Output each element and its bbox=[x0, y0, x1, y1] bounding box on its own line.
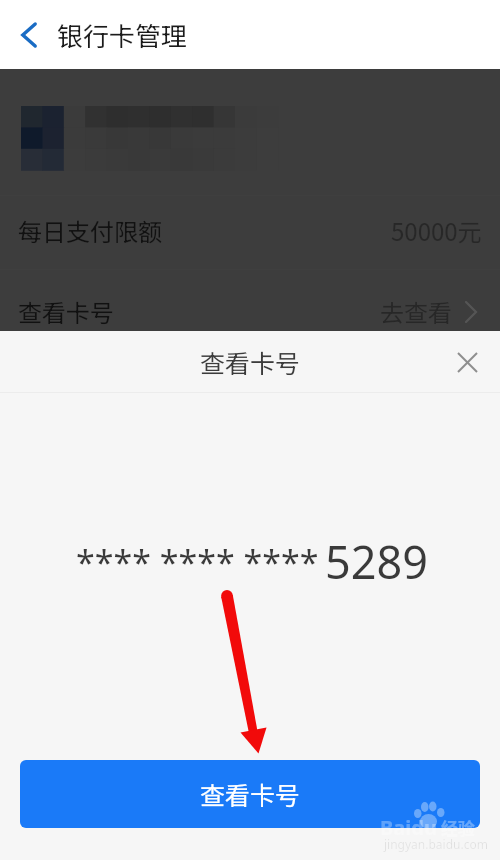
button[interactable]: 每日支付限额 bbox=[0, 194, 500, 267]
staticText: Baidu bbox=[380, 814, 437, 841]
staticText: 50000元 bbox=[391, 213, 482, 248]
button[interactable]: 查看卡号 bbox=[20, 760, 480, 828]
staticText: 银行卡管理 bbox=[57, 16, 188, 54]
staticText: **** **** **** bbox=[76, 539, 319, 585]
button[interactable]: Back bbox=[0, 0, 46, 69]
staticText: jingyan.baidu.com bbox=[384, 836, 488, 852]
staticText: 查看卡号 bbox=[200, 344, 301, 380]
staticText: 查看卡号 bbox=[18, 294, 114, 329]
button[interactable]: Close bbox=[445, 340, 489, 384]
staticText: 查看卡号 bbox=[200, 776, 301, 812]
button[interactable]: 查看卡号 bbox=[0, 281, 500, 342]
staticText: 经验 bbox=[441, 815, 475, 840]
staticText: 5289 bbox=[325, 531, 428, 592]
staticText: 每日支付限额 bbox=[18, 213, 162, 248]
staticText: 去查看 bbox=[380, 294, 452, 329]
